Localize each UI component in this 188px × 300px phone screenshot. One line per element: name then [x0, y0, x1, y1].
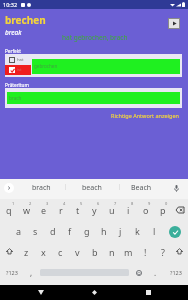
button[interactable]: ?	[154, 241, 171, 262]
button[interactable]: y	[86, 199, 103, 220]
button[interactable]: Richtige Antwort anzeigen	[111, 112, 179, 119]
staticText: w	[23, 204, 31, 216]
button[interactable]: u	[103, 199, 120, 220]
button[interactable]: q	[0, 199, 18, 220]
button[interactable]: ?123	[164, 262, 188, 283]
staticText: p	[160, 204, 166, 216]
button[interactable]: p	[154, 199, 171, 220]
staticText: ?	[161, 246, 165, 258]
staticText: u	[109, 204, 115, 216]
button[interactable]: brach	[7, 92, 180, 104]
staticText: 1	[12, 201, 15, 206]
staticText: v	[75, 246, 80, 258]
button[interactable]: s	[27, 220, 44, 241]
button[interactable]: d	[44, 220, 61, 241]
staticText: m	[124, 246, 133, 258]
staticText: q	[6, 204, 12, 216]
button[interactable]: More suggestions	[0, 179, 17, 199]
button[interactable]: Emoji	[130, 262, 147, 283]
staticText: hat	[17, 57, 24, 63]
staticText: Beach	[131, 183, 152, 193]
button[interactable]: i	[120, 199, 137, 220]
button[interactable]: a	[10, 220, 27, 241]
button[interactable]: Shift	[0, 241, 18, 262]
staticText: b	[92, 246, 98, 258]
staticText: s	[33, 225, 38, 237]
button[interactable]: v	[69, 241, 86, 262]
button[interactable]: !	[137, 241, 154, 262]
staticText: t	[76, 204, 80, 216]
button[interactable]: ,	[24, 262, 39, 283]
staticText: 4	[63, 201, 66, 206]
button[interactable]: r	[52, 199, 69, 220]
staticText: i	[127, 204, 130, 216]
staticText: 9	[148, 201, 151, 206]
staticText: ,	[30, 267, 33, 278]
staticText: z	[24, 246, 29, 258]
staticText: 8	[131, 201, 134, 206]
staticText: brach	[9, 95, 22, 101]
staticText: hat gebrochen, brach	[62, 33, 128, 42]
staticText: d	[50, 225, 56, 237]
button[interactable]: Recents	[135, 285, 161, 300]
staticText: ist	[17, 67, 22, 73]
staticText: l	[153, 225, 156, 237]
button[interactable]: Home	[81, 285, 107, 300]
button[interactable]: Backspace	[171, 199, 188, 220]
staticText: gebrochen	[34, 63, 58, 69]
staticText: 0	[165, 201, 168, 206]
staticText: y	[92, 204, 97, 216]
button[interactable]: e	[35, 199, 52, 220]
button[interactable]: ist	[5, 65, 31, 75]
staticText: c	[58, 246, 63, 258]
staticText: g	[84, 225, 90, 237]
staticText: f	[68, 225, 72, 237]
staticText: 5	[80, 201, 83, 206]
button[interactable]: Enter	[163, 220, 188, 241]
staticText: beach	[82, 183, 102, 193]
button[interactable]: hat	[5, 54, 31, 65]
button[interactable]: l	[146, 220, 163, 241]
button[interactable]: Voice input	[164, 179, 188, 199]
button[interactable]: b	[86, 241, 103, 262]
button[interactable]: Play pronunciation	[168, 18, 180, 29]
button[interactable]: h	[95, 220, 112, 241]
button[interactable]: x	[35, 241, 52, 262]
button[interactable]: o	[137, 199, 154, 220]
button[interactable]: brach	[17, 179, 65, 199]
button[interactable]: k	[129, 220, 146, 241]
staticText: j	[119, 225, 122, 237]
button[interactable]: Back	[28, 285, 54, 300]
button[interactable]: ?123	[0, 262, 24, 283]
button[interactable]: c	[52, 241, 69, 262]
staticText: h	[101, 225, 107, 237]
staticText: ?123	[170, 269, 182, 276]
button[interactable]: n	[103, 241, 120, 262]
staticText: e	[41, 204, 47, 216]
staticText: k	[135, 225, 140, 237]
button[interactable]: gebrochen	[32, 59, 180, 74]
staticText: .	[154, 267, 157, 278]
staticText: 7	[114, 201, 117, 206]
button[interactable]: j	[112, 220, 129, 241]
button[interactable]: Shift	[171, 241, 188, 262]
button[interactable]: Beach	[119, 179, 164, 199]
staticText: Präteritum	[5, 82, 29, 88]
button[interactable]: z	[18, 241, 35, 262]
staticText: !	[144, 246, 147, 258]
staticText: break	[5, 28, 22, 37]
button[interactable]: f	[61, 220, 78, 241]
staticText: brechen	[5, 13, 46, 27]
staticText: 10:32	[3, 1, 18, 8]
button[interactable]: w	[18, 199, 35, 220]
staticText: o	[143, 204, 149, 216]
staticText: 6	[97, 201, 100, 206]
button[interactable]: t	[69, 199, 86, 220]
button[interactable]: .	[147, 262, 164, 283]
button[interactable]: m	[120, 241, 137, 262]
staticText: 3	[46, 201, 49, 206]
button[interactable]: g	[78, 220, 95, 241]
button[interactable]: beach	[65, 179, 119, 199]
staticText: ?123	[6, 269, 18, 276]
